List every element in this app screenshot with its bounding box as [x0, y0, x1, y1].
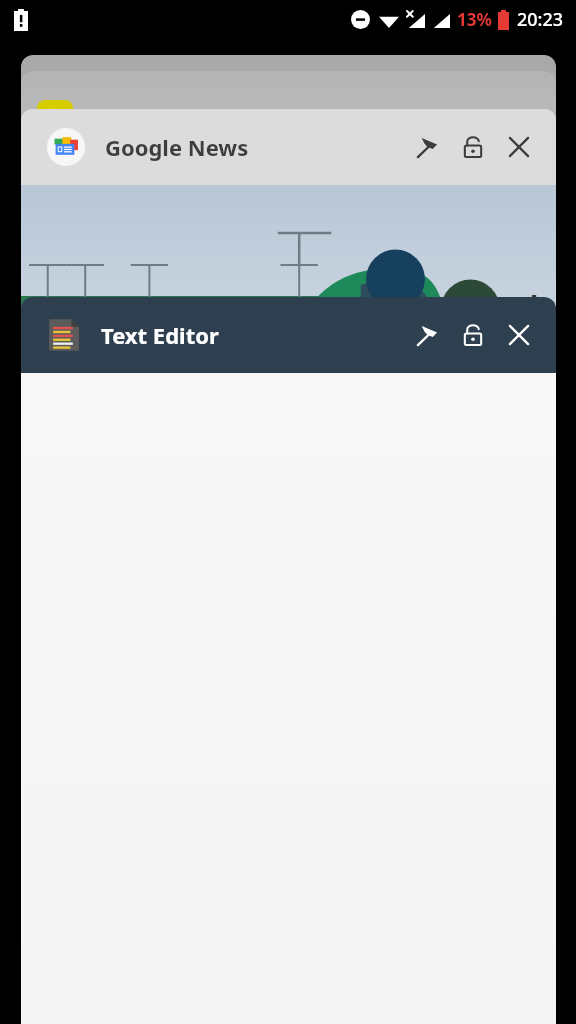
button[interactable]: Lock	[450, 124, 496, 170]
button[interactable]: Snapchat	[21, 87, 556, 177]
button[interactable]: Close	[496, 312, 542, 358]
staticText: 20:23	[517, 7, 564, 32]
button[interactable]: Google News	[21, 109, 556, 185]
button[interactable]: Pin	[404, 124, 450, 170]
button[interactable]: Pin	[404, 312, 450, 358]
button[interactable]: Text Editor	[21, 297, 556, 373]
button[interactable]	[21, 71, 556, 161]
staticText: Snapchat	[89, 104, 187, 133]
staticText: Google News	[105, 132, 404, 162]
button[interactable]	[21, 55, 556, 145]
staticText: Text Editor	[101, 320, 404, 350]
button[interactable]: Close	[496, 124, 542, 170]
button[interactable]: Lock	[450, 312, 496, 358]
staticText: 13%	[457, 8, 492, 31]
